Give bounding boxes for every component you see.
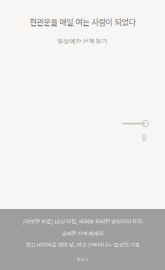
staticText: 장고 네이버로 계여 넣, 하고 산뿌어나는 입상의 기록 [25, 240, 139, 249]
staticText: 현관문을 매일 여는 사람이 되었다 [29, 16, 135, 28]
staticText: 출판사 [76, 257, 88, 263]
staticText: [따뜻한 위로] 16일 아침, 버퍼를 피워한 발걸이의 작자 [23, 217, 142, 225]
staticText: 금세한 산책 에세이 [61, 229, 103, 237]
staticText: 일상예찬 산책 일기 [57, 37, 107, 46]
